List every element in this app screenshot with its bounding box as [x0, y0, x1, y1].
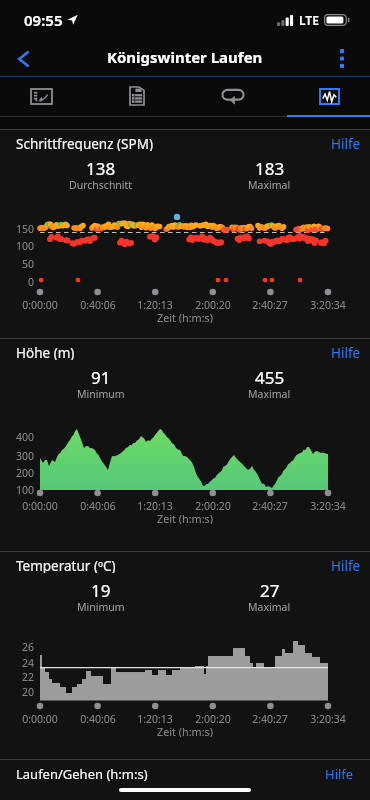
staticText: 50	[22, 257, 35, 269]
staticText: 0:00:00	[22, 712, 58, 724]
staticText: Hilfe	[331, 135, 361, 151]
staticText: LTE	[299, 12, 319, 28]
staticText: 22	[22, 670, 35, 682]
staticText: Minimum	[77, 387, 125, 401]
button[interactable]: Details	[107, 77, 167, 115]
staticText: 26	[22, 640, 35, 652]
staticText: 0:40:06	[80, 298, 116, 310]
staticText: Zeit (h:m:s)	[157, 310, 213, 323]
staticText: 300	[16, 449, 35, 461]
button[interactable]: Charts	[299, 77, 359, 115]
staticText: 2:40:27	[252, 298, 288, 310]
button[interactable]: Map	[11, 77, 71, 115]
staticText: 19	[91, 579, 111, 602]
button[interactable]: Back	[0, 40, 46, 77]
staticText: 400	[16, 430, 35, 442]
staticText: 2:00:20	[195, 298, 231, 310]
button[interactable]: Hilfe	[331, 135, 361, 151]
staticText: 1:20:13	[137, 298, 173, 310]
staticText: 3:20:34	[310, 712, 346, 724]
staticText: 138	[86, 157, 116, 180]
staticText: Maximal	[248, 600, 291, 614]
staticText: Temperatur (ºC)	[16, 557, 116, 573]
staticText: Maximal	[248, 387, 291, 401]
staticText: Durchschnitt	[69, 178, 133, 192]
button[interactable]: Hilfe	[331, 557, 361, 573]
staticText: Hilfe	[325, 765, 354, 783]
staticText: 100	[16, 483, 35, 495]
staticText: Hilfe	[331, 344, 361, 360]
staticText: 2:00:20	[195, 712, 231, 724]
staticText: 100	[16, 239, 35, 251]
staticText: Schrittfrequenz (SPM)	[16, 135, 153, 151]
staticText: 2:40:27	[252, 499, 288, 511]
staticText: 2:40:27	[252, 712, 288, 724]
staticText: Königswinter Laufen	[107, 47, 263, 67]
staticText: 1:20:13	[137, 712, 173, 724]
staticText: 27	[260, 579, 280, 602]
staticText: 24	[22, 656, 35, 668]
staticText: 455	[255, 366, 285, 389]
staticText: Hilfe	[331, 557, 361, 573]
staticText: 3:20:34	[310, 499, 346, 511]
staticText: 200	[16, 466, 35, 478]
staticText: Zeit (h:m:s)	[157, 724, 213, 737]
staticText: 0:40:06	[80, 499, 116, 511]
staticText: 20	[22, 685, 35, 697]
staticText: 0:00:00	[22, 499, 58, 511]
staticText: 91	[91, 366, 111, 389]
button[interactable]: Laufen/Gehen (h:m:s)	[0, 759, 370, 789]
staticText: 0:40:06	[80, 712, 116, 724]
staticText: 2:00:20	[195, 499, 231, 511]
staticText: Zeit (h:m:s)	[157, 511, 213, 524]
staticText: 09:55	[24, 10, 63, 30]
staticText: 183	[255, 157, 285, 180]
staticText: 1:20:13	[137, 499, 173, 511]
button[interactable]: Hilfe	[331, 344, 361, 360]
staticText: Laufen/Gehen (h:m:s)	[16, 765, 148, 783]
staticText: Maximal	[248, 178, 291, 192]
staticText: Höhe (m)	[16, 344, 75, 360]
button[interactable]: Laps	[203, 77, 263, 115]
button[interactable]: More options	[313, 40, 370, 77]
staticText: 0:00:00	[22, 298, 58, 310]
staticText: 0	[28, 275, 35, 287]
staticText: 150	[16, 222, 35, 234]
staticText: 3:20:34	[310, 298, 346, 310]
staticText: Minimum	[77, 600, 125, 614]
